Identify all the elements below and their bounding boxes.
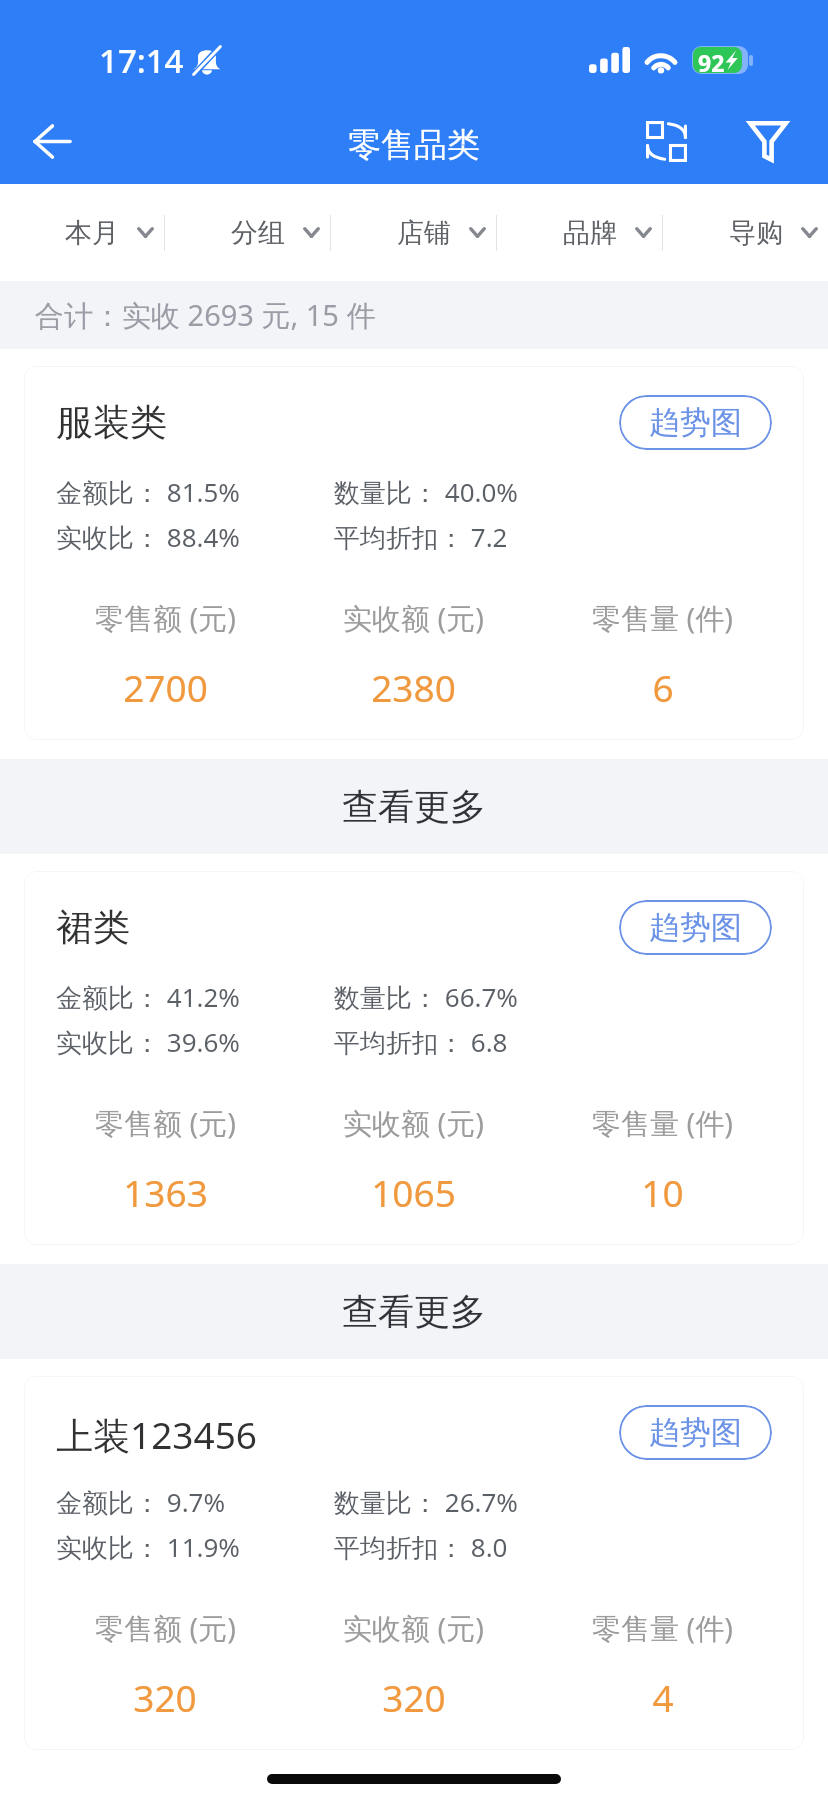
staticText: 金额比： 81.5% (56, 474, 240, 510)
staticText: 查看更多 (342, 784, 486, 829)
button[interactable]: 查看更多 (0, 1264, 828, 1359)
staticText: 查看更多 (342, 1289, 486, 1334)
staticText: 金额比： 41.2% (56, 979, 240, 1015)
staticText: 1065 (371, 1167, 456, 1217)
button[interactable]: 裙类 (24, 871, 804, 1245)
staticText: 平均折扣： 6.8 (334, 1024, 508, 1060)
staticText: 实收比： 88.4% (56, 519, 240, 555)
staticText: 零售额 (元) (95, 598, 236, 638)
staticText: 趋势图 (649, 1413, 742, 1452)
staticText: 实收比： 11.9% (56, 1529, 240, 1565)
staticText: 实收额 (元) (343, 598, 484, 638)
staticText: 零售额 (元) (95, 1103, 236, 1143)
staticText: 导购 (729, 216, 783, 250)
button[interactable]: 查看更多 (0, 759, 828, 854)
button[interactable]: 趋势图 (619, 1405, 772, 1460)
staticText: 服装类 (56, 399, 167, 446)
staticText: 上装123456 (56, 1409, 257, 1460)
staticText: 数量比： 26.7% (334, 1484, 518, 1520)
staticText: 零售额 (元) (95, 1608, 236, 1648)
button[interactable]: 导购 (663, 184, 828, 281)
staticText: 数量比： 40.0% (334, 474, 518, 510)
staticText: 平均折扣： 8.0 (334, 1529, 508, 1565)
staticText: 17:14 (99, 38, 184, 83)
staticText: 实收比： 39.6% (56, 1024, 240, 1060)
staticText: 合计：实收 2693 元, 15 件 (35, 295, 376, 335)
button[interactable]: 店铺 (331, 184, 496, 281)
staticText: 320 (133, 1672, 197, 1722)
staticText: 2700 (123, 662, 208, 712)
staticText: 4 (652, 1672, 674, 1722)
staticText: 趋势图 (649, 403, 742, 442)
button[interactable]: 服装类 (24, 366, 804, 740)
staticText: 品牌 (563, 216, 617, 250)
staticText: 92 (698, 47, 725, 73)
staticText: 数量比： 66.7% (334, 979, 518, 1015)
staticText: 店铺 (397, 216, 451, 250)
staticText: 实收额 (元) (343, 1103, 484, 1143)
button[interactable]: 本月 (0, 184, 164, 281)
staticText: 金额比： 9.7% (56, 1484, 226, 1520)
staticText: 2380 (371, 662, 456, 712)
button[interactable]: Filter (730, 103, 806, 179)
staticText: 实收额 (元) (343, 1608, 484, 1648)
staticText: 零售品类 (348, 124, 480, 166)
staticText: 零售量 (件) (592, 598, 733, 638)
staticText: 分组 (231, 216, 285, 250)
staticText: 本月 (65, 216, 119, 250)
staticText: 10 (641, 1167, 684, 1217)
button[interactable]: 趋势图 (619, 395, 772, 450)
staticText: 裙类 (56, 904, 130, 951)
staticText: 趋势图 (649, 908, 742, 947)
staticText: 零售量 (件) (592, 1103, 733, 1143)
button[interactable]: 分组 (165, 184, 330, 281)
staticText: 320 (382, 1672, 446, 1722)
button[interactable]: 趋势图 (619, 900, 772, 955)
staticText: 1363 (123, 1167, 208, 1217)
button[interactable]: 品牌 (497, 184, 662, 281)
staticText: 零售量 (件) (592, 1608, 733, 1648)
button[interactable]: 上装123456 (24, 1376, 804, 1750)
staticText: 6 (652, 662, 674, 712)
button[interactable]: Back (16, 105, 88, 177)
button[interactable]: Switch layout (628, 103, 704, 179)
staticText: 平均折扣： 7.2 (334, 519, 508, 555)
